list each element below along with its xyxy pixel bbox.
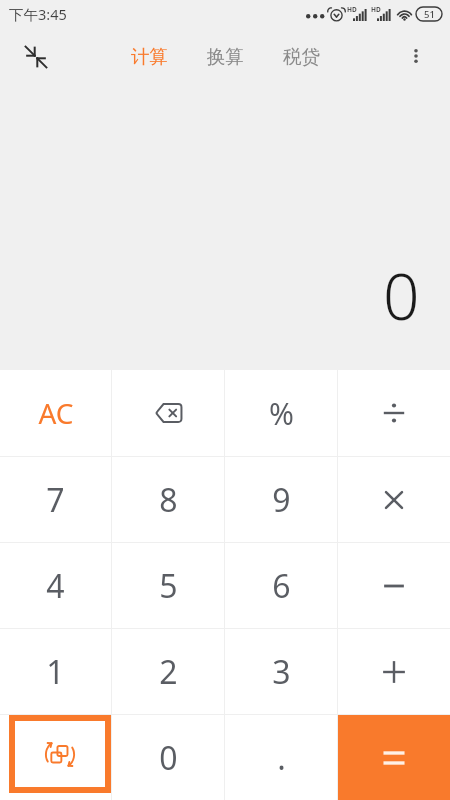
button[interactable]: 7 [0, 457, 111, 542]
button[interactable]: 计算 [127, 35, 172, 78]
staticText: HD [347, 5, 357, 14]
staticText: 0 [383, 252, 420, 339]
staticText: 税贷 [283, 45, 320, 68]
button[interactable]: Multiply [338, 457, 450, 542]
button[interactable]: 税贷 [279, 35, 324, 78]
staticText: 2 [159, 650, 178, 694]
staticText: 0 [159, 736, 178, 780]
button[interactable]: Backspace [112, 370, 224, 456]
button[interactable]: 3 [225, 629, 337, 714]
staticText: 4 [46, 564, 65, 608]
button[interactable]: Equals [338, 715, 450, 800]
button[interactable]: 2 [112, 629, 224, 714]
button[interactable]: . [225, 715, 337, 800]
staticText: 换算 [207, 45, 244, 68]
staticText: 计算 [131, 45, 168, 68]
button[interactable]: 4 [0, 543, 111, 628]
staticText: HD [371, 5, 381, 14]
button[interactable]: More options [396, 36, 436, 76]
button[interactable]: AC [0, 370, 111, 456]
button[interactable]: 8 [112, 457, 224, 542]
button[interactable]: Collapse [16, 37, 56, 77]
button[interactable]: 6 [225, 543, 337, 628]
staticText: . [277, 736, 286, 780]
staticText: 7 [46, 478, 65, 522]
staticText: 9 [272, 478, 291, 522]
staticText: AC [38, 394, 74, 432]
staticText: 下午3:45 [9, 4, 67, 24]
staticText: % [269, 393, 294, 434]
staticText: 6 [272, 564, 291, 608]
staticText: 1 [46, 650, 65, 694]
button[interactable]: 5 [112, 543, 224, 628]
button[interactable]: Plus [338, 629, 450, 714]
button[interactable]: % [225, 370, 337, 456]
staticText: 5 [159, 564, 178, 608]
button[interactable]: 换算 [203, 35, 248, 78]
button[interactable]: Divide [338, 370, 450, 456]
button[interactable]: 9 [225, 457, 337, 542]
button[interactable]: 0 [112, 715, 224, 800]
staticText: 8 [159, 478, 178, 522]
staticText: 51 [424, 8, 435, 21]
button[interactable]: 1 [0, 629, 111, 714]
button[interactable]: Minus [338, 543, 450, 628]
button[interactable]: Unit conversion [9, 715, 111, 793]
staticText: 3 [272, 650, 291, 694]
